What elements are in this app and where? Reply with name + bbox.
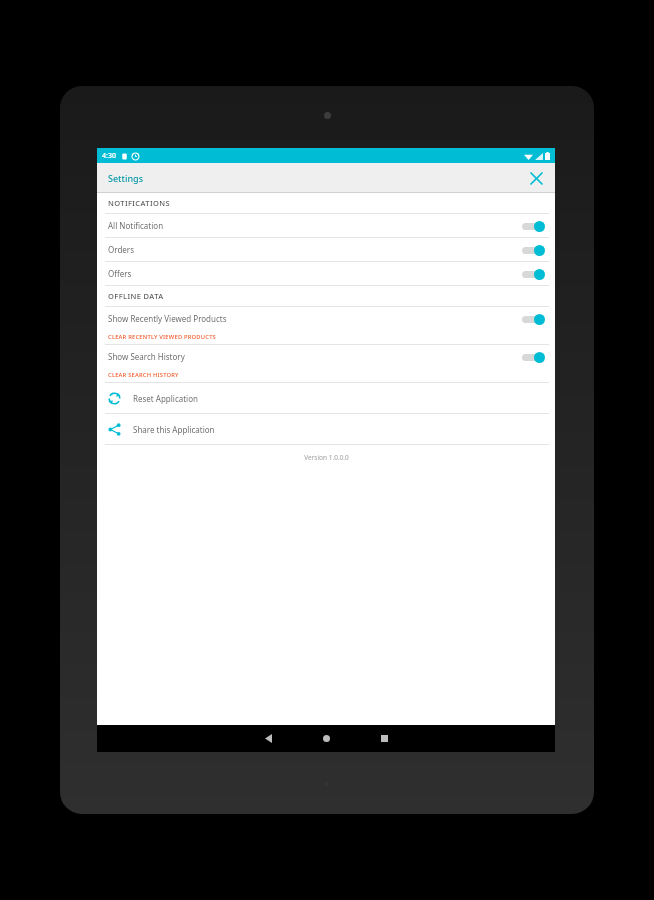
button[interactable]: Recents [355,725,413,752]
staticText: Share this Application [133,424,215,435]
button[interactable]: Toggle [521,218,545,234]
staticText: NOTIFICATIONS [108,198,171,208]
button[interactable]: CLEAR RECENTLY VIEWED PRODUCTS [97,330,555,344]
staticText: Version 1.0.0.0 [304,453,349,462]
button[interactable]: Toggle [521,266,545,282]
button[interactable]: All Notification [97,214,555,237]
button[interactable]: Reset Application [97,383,555,413]
button[interactable]: Back [239,725,297,752]
button[interactable]: Home [297,725,355,752]
button[interactable]: Show Recently Viewed Products [97,307,555,330]
button[interactable]: Share this Application [97,414,555,444]
button[interactable]: Orders [97,238,555,261]
staticText: CLEAR SEARCH HISTORY [108,371,179,379]
button[interactable]: Offers [97,262,555,285]
button[interactable]: Toggle [521,311,545,327]
staticText: Settings [108,172,144,184]
button[interactable]: Close [525,167,547,189]
staticText: 4:30 [102,151,116,161]
button[interactable]: Toggle [521,242,545,258]
staticText: Show Recently Viewed Products [108,313,521,324]
staticText: Show Search History [108,351,521,362]
button[interactable]: CLEAR SEARCH HISTORY [97,368,555,382]
staticText: All Notification [108,220,521,231]
staticText: Reset Application [133,393,198,404]
staticText: OFFLINE DATA [108,291,164,301]
button[interactable]: Toggle [521,349,545,365]
staticText: Orders [108,244,521,255]
staticText: Offers [108,268,521,279]
staticText: CLEAR RECENTLY VIEWED PRODUCTS [108,333,217,341]
button[interactable]: Show Search History [97,345,555,368]
